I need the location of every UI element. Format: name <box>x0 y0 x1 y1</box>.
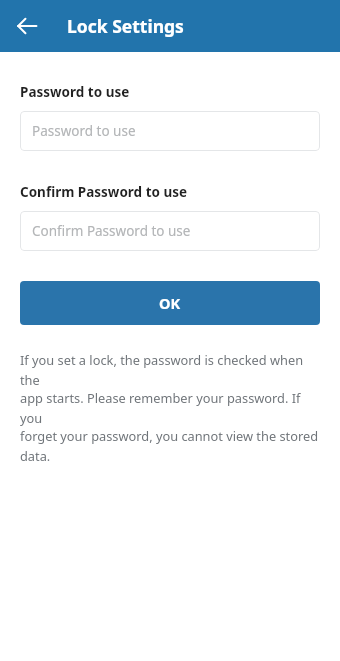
staticText: app starts. Please remember your passwor… <box>20 389 320 427</box>
button[interactable]: Password to use <box>20 111 320 151</box>
button[interactable]: OK <box>20 281 320 325</box>
button[interactable]: Confirm Password to use <box>20 211 320 251</box>
staticText: Password to use <box>32 122 136 140</box>
staticText: forget your password, you cannot view th… <box>20 427 320 465</box>
staticText: Confirm Password to use <box>32 222 191 240</box>
staticText: Lock Settings <box>67 14 184 38</box>
staticText: Confirm Password to use <box>20 183 188 201</box>
staticText: If you set a lock, the password is check… <box>20 351 320 389</box>
button[interactable]: Back <box>8 7 46 45</box>
staticText: Password to use <box>20 83 130 101</box>
staticText: OK <box>159 293 181 313</box>
